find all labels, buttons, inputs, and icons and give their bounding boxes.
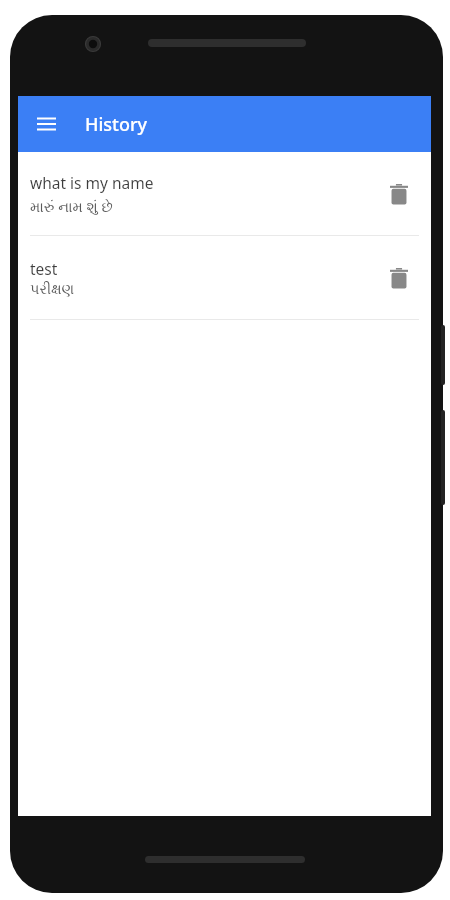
staticText: test (30, 258, 58, 279)
staticText: what is my name (30, 172, 154, 193)
button[interactable]: Delete history item (375, 254, 423, 302)
staticText: History (85, 112, 148, 137)
button[interactable]: Delete history item (375, 170, 423, 218)
button[interactable]: test (18, 236, 431, 319)
button[interactable]: what is my name (18, 152, 431, 235)
staticText: પરીક્ષણ (30, 282, 75, 297)
staticText: મારું નામ શું છે (30, 196, 113, 216)
button[interactable]: Open navigation menu (25, 103, 67, 145)
